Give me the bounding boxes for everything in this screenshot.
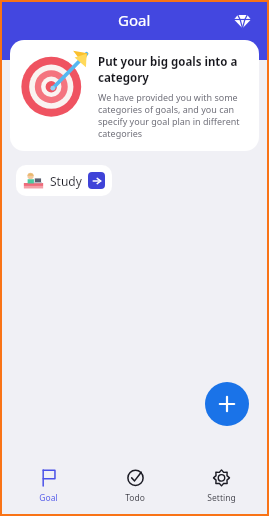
button[interactable]: Study: [16, 165, 112, 196]
staticText: Goal: [118, 10, 151, 30]
button[interactable]: Add goal: [205, 382, 249, 426]
staticText: Setting: [207, 492, 236, 504]
staticText: Study: [50, 173, 82, 189]
staticText: Goal: [39, 492, 58, 504]
staticText: Put your big goals into a category: [98, 54, 247, 85]
button[interactable]: Todo: [95, 458, 175, 514]
staticText: We have provided you with some categorie…: [98, 91, 247, 139]
staticText: Todo: [125, 492, 145, 504]
button[interactable]: Goal: [8, 458, 88, 514]
button[interactable]: Premium: [229, 7, 255, 33]
button[interactable]: Put your big goals into a category: [10, 40, 259, 151]
button[interactable]: Setting: [181, 458, 261, 514]
